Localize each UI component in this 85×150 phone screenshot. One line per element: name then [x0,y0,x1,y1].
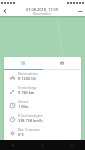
button[interactable]: Back [0,6,10,16]
button[interactable]: Trip details [4,57,42,69]
button[interactable]: Photos [42,57,81,69]
staticText: R 1200 GS [18,76,36,81]
button[interactable]: Max. Temperatur [4,126,81,140]
button[interactable]: Fahrzeit [4,98,81,112]
staticText: Motorradtour [33,12,52,16]
staticText: 9.784 km [18,90,35,95]
staticText: Motorradname [18,72,38,76]
staticText: Ø Geschwindigkeit [18,114,43,118]
staticText: Streckenlänge [18,86,37,90]
button[interactable]: Home [39,142,46,149]
button[interactable]: Streckenlänge [4,84,81,98]
staticText: Fahrzeit [18,100,29,104]
button[interactable]: Ø Geschwindigkeit [4,112,81,126]
staticText: 1 Min. [18,104,30,109]
staticText: 6°C [18,132,25,137]
button[interactable]: More options [75,6,85,16]
staticText: 07.08.2018, 17:59 [26,7,58,12]
button[interactable]: Back [9,142,16,149]
staticText: 338.758 km/h [18,118,43,123]
button[interactable]: Motorradname [4,70,81,84]
button[interactable]: Recents [69,142,76,149]
staticText: Max. Temperatur [18,128,41,132]
